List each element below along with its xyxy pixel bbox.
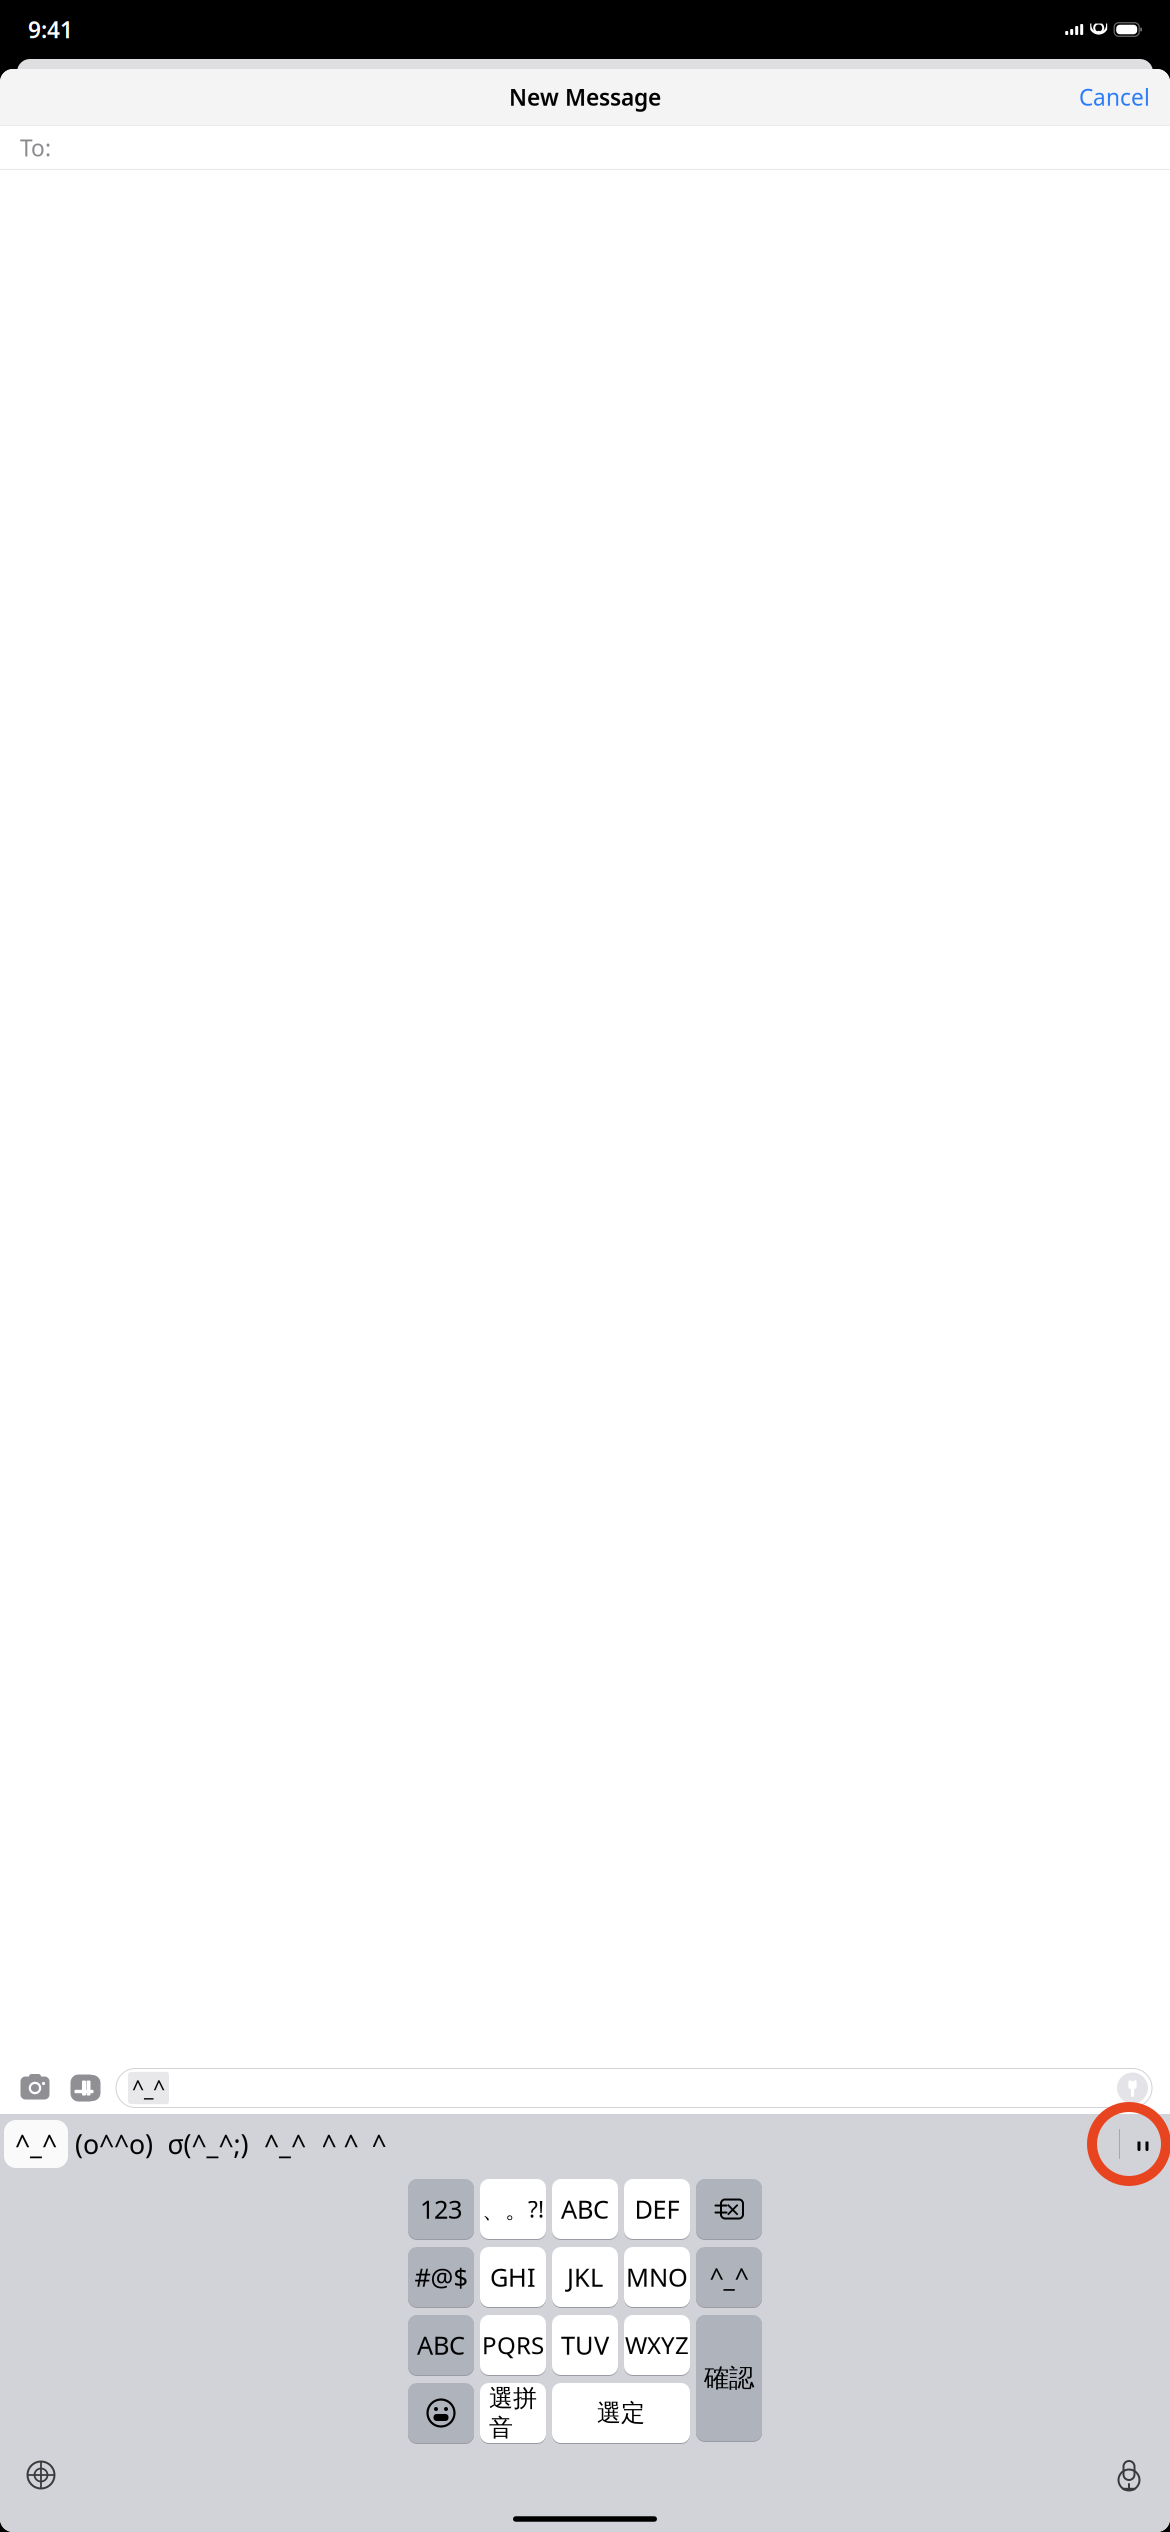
button[interactable]: Change keyboard [14, 2448, 68, 2502]
staticText: New Message [509, 82, 661, 112]
staticText: PQRS [482, 2329, 544, 2361]
staticText: TUV [561, 2328, 609, 2362]
button[interactable]: Delete [696, 2178, 762, 2240]
staticText: ^_^ [132, 2074, 165, 2102]
button[interactable]: DEF [624, 2178, 690, 2240]
button[interactable]: ^ ^ [314, 2120, 366, 2168]
button[interactable]: To: [0, 126, 1170, 170]
button[interactable]: 、。?! [480, 2178, 546, 2240]
button[interactable]: ABC [552, 2178, 618, 2240]
button[interactable]: Cancel [1063, 72, 1166, 122]
button[interactable]: #@$ [408, 2246, 474, 2308]
staticText: ABC [561, 2192, 609, 2226]
button[interactable]: (o^^o) [68, 2120, 160, 2168]
button[interactable]: Hide suggestions [1120, 2120, 1166, 2168]
staticText: × [725, 2192, 739, 2226]
button[interactable]: 選拼音 [480, 2382, 546, 2444]
staticText: DEF [634, 2192, 679, 2226]
button[interactable]: ^_^ [696, 2246, 762, 2308]
staticText: Cancel [1079, 82, 1150, 112]
staticText: ^ ^ [321, 2126, 358, 2162]
staticText: ^_^ [709, 2260, 748, 2294]
button[interactable]: Emoji [408, 2382, 474, 2444]
staticText: σ(^_^;) [167, 2126, 248, 2162]
staticText: GHI [490, 2260, 536, 2294]
button[interactable]: GHI [480, 2246, 546, 2308]
staticText: ^_^ [264, 2126, 306, 2162]
button[interactable]: TUV [552, 2314, 618, 2376]
staticText: JKL [567, 2260, 603, 2294]
staticText: ^_^ [15, 2126, 57, 2162]
button[interactable]: 選定 [552, 2382, 690, 2444]
staticText: 選拼音 [489, 2383, 537, 2442]
staticText: 、。?! [482, 2194, 544, 2224]
button[interactable]: ^_^ [256, 2120, 314, 2168]
staticText: WXYZ [625, 2329, 689, 2361]
button[interactable]: ABC [408, 2314, 474, 2376]
staticText: 123 [420, 2192, 462, 2226]
staticText: 9:41 [28, 14, 73, 44]
staticText: To: [20, 132, 51, 163]
button[interactable]: Camera [18, 2067, 52, 2109]
button[interactable]: 確認 [696, 2314, 762, 2442]
button[interactable]: WXYZ [624, 2314, 690, 2376]
button[interactable]: Apps [66, 2067, 102, 2109]
button[interactable]: MNO [624, 2246, 690, 2308]
staticText: (o^^o) [75, 2126, 153, 2162]
button[interactable]: Dictation [1102, 2447, 1156, 2503]
button[interactable]: Send [1117, 2072, 1148, 2103]
staticText: 確認 [704, 2362, 754, 2393]
staticText: ABC [417, 2328, 465, 2362]
staticText: MNO [626, 2260, 688, 2294]
button[interactable]: JKL [552, 2246, 618, 2308]
button[interactable]: PQRS [480, 2314, 546, 2376]
button[interactable]: σ(^_^;) [160, 2120, 256, 2168]
staticText: #@$ [414, 2260, 467, 2294]
button[interactable]: 123 [408, 2178, 474, 2240]
button[interactable]: ^ [366, 2120, 392, 2168]
button[interactable]: ^_^ [4, 2120, 68, 2168]
staticText: 選定 [597, 2398, 645, 2428]
staticText: ^ [371, 2126, 386, 2162]
